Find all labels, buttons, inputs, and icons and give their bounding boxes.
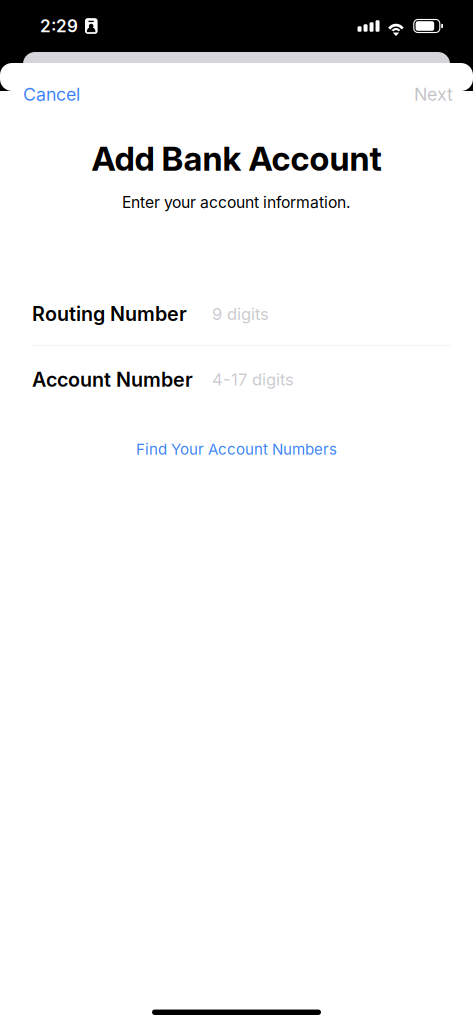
- button[interactable]: Next: [406, 74, 461, 114]
- staticText: Account Number: [32, 368, 193, 392]
- button[interactable]: Find Your Account Numbers: [126, 437, 347, 461]
- staticText: Enter your account information.: [122, 193, 351, 212]
- staticText: Add Bank Account: [91, 138, 381, 179]
- staticText: Cancel: [23, 83, 80, 105]
- button[interactable]: Routing Number: [0, 283, 473, 345]
- staticText: 4-17 digits: [212, 370, 294, 390]
- staticText: 2:29: [40, 16, 78, 36]
- staticText: Next: [414, 83, 453, 105]
- button[interactable]: Cancel: [15, 74, 88, 114]
- staticText: 9 digits: [212, 304, 269, 324]
- staticText: Routing Number: [32, 302, 187, 326]
- button[interactable]: Account Number: [0, 346, 473, 411]
- staticText: Find Your Account Numbers: [136, 440, 337, 458]
